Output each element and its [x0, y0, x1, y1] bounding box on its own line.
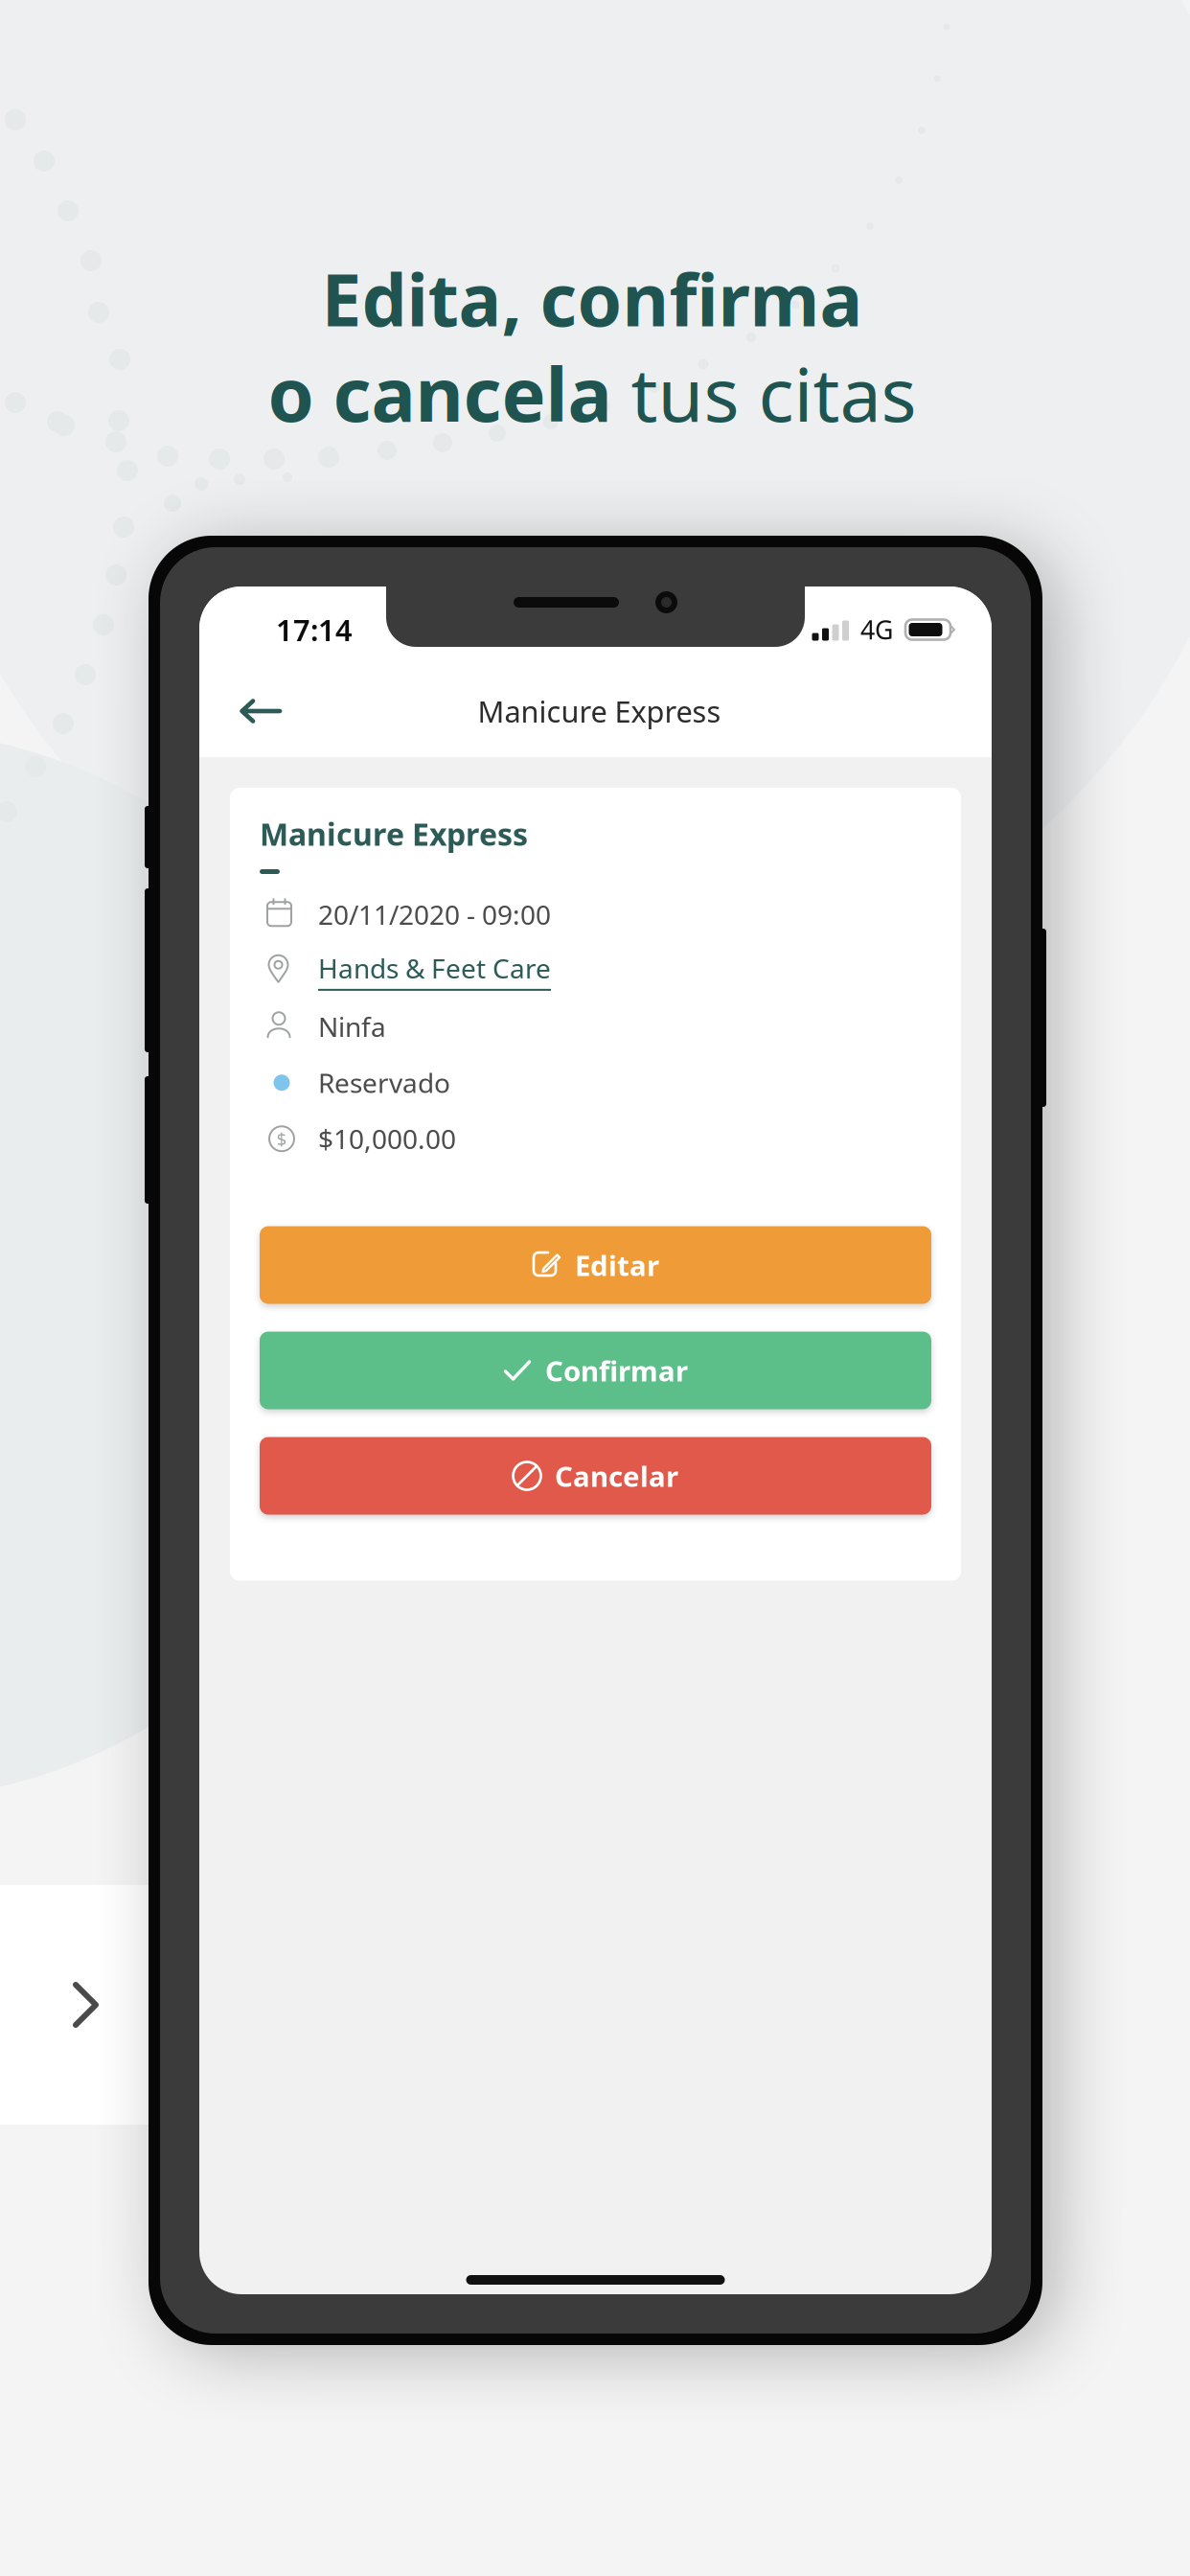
- staticText: tus citas: [631, 344, 916, 442]
- staticText: Reservado: [318, 1065, 450, 1101]
- staticText: Edita, confirma: [321, 251, 863, 346]
- staticText: Ninfa: [318, 1009, 386, 1044]
- staticText: Hands & Feet Care: [318, 950, 551, 986]
- staticText: o cancela: [268, 344, 631, 442]
- staticText: Editar: [575, 1246, 659, 1284]
- button[interactable]: Editar: [260, 1226, 931, 1304]
- button[interactable]: Back: [203, 673, 318, 749]
- staticText: 4G: [860, 613, 893, 647]
- button[interactable]: Confirmar: [260, 1332, 931, 1409]
- staticText: 20/11/2020 - 09:00: [318, 897, 551, 932]
- staticText: Manicure Express: [478, 692, 721, 731]
- staticText: Cancelar: [555, 1457, 678, 1495]
- staticText: Confirmar: [545, 1352, 688, 1389]
- staticText: $10,000.00: [318, 1121, 456, 1157]
- staticText: Manicure Express: [260, 813, 528, 854]
- staticText: $: [276, 1127, 287, 1151]
- button[interactable]: Cancelar: [260, 1437, 931, 1515]
- staticText: 17:14: [276, 610, 353, 649]
